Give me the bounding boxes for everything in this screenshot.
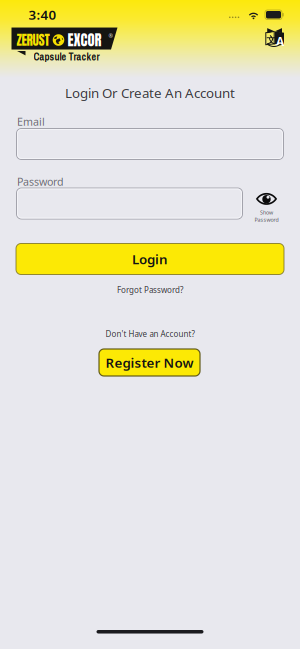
- button[interactable]: Login: [16, 243, 284, 274]
- button[interactable]: Register Now: [99, 349, 200, 376]
- staticText: Password: [17, 174, 64, 189]
- staticText: Login: [132, 250, 168, 268]
- staticText: Password: [254, 216, 278, 223]
- staticText: Email: [17, 114, 45, 129]
- button[interactable]: Forgot Password?: [90, 282, 210, 298]
- button[interactable]: Show Password: [248, 192, 284, 223]
- staticText: ®: [108, 32, 112, 40]
- staticText: Capsule Tracker: [33, 50, 99, 64]
- staticText: Register Now: [105, 354, 193, 371]
- staticText: A: [276, 33, 284, 49]
- staticText: ZERUST: [16, 30, 49, 50]
- staticText: 文: [267, 34, 276, 46]
- staticText: Don't Have an Account?: [105, 328, 194, 339]
- staticText: 3:40: [28, 6, 56, 23]
- staticText: Login Or Create An Account: [65, 84, 235, 102]
- staticText: Show: [260, 209, 273, 216]
- staticText: Forgot Password?: [117, 285, 183, 295]
- staticText: EXCOR: [67, 29, 101, 51]
- button[interactable]: Translate: [262, 25, 288, 51]
